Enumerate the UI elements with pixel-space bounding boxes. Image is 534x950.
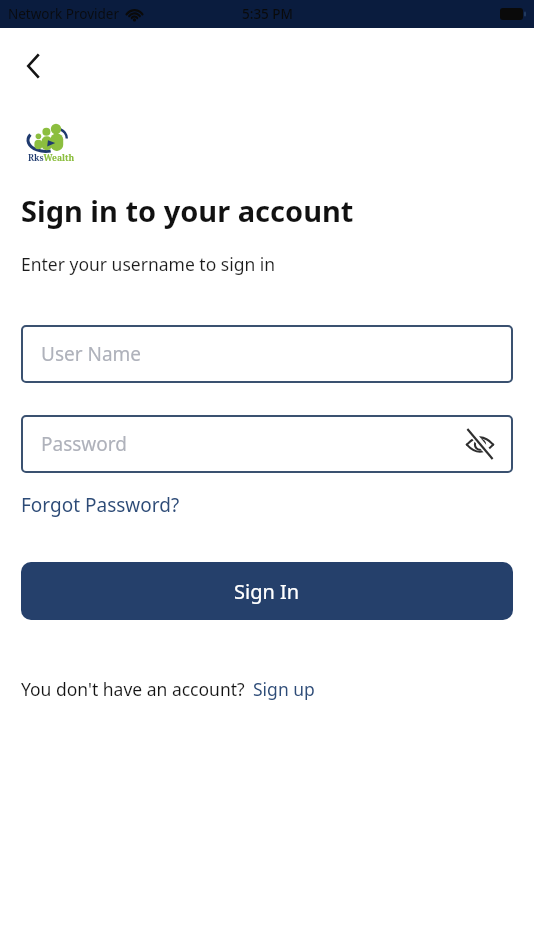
staticText: Sign In (234, 578, 300, 605)
staticText: 5:35 PM (242, 5, 293, 23)
button[interactable] (465, 429, 495, 459)
staticText: Network Provider (8, 5, 120, 23)
staticText: Enter your username to sign in (21, 252, 276, 276)
staticText: Sign in to your account (21, 191, 354, 230)
button[interactable]: Sign up (253, 677, 315, 701)
staticText: Password (41, 431, 127, 457)
button[interactable]: Password (21, 415, 513, 473)
staticText: You don't have an account? (21, 677, 245, 701)
button[interactable]: Sign In (21, 562, 513, 620)
button[interactable] (21, 52, 49, 80)
staticText: RksWealth (28, 152, 75, 164)
button[interactable]: Forgot Password? (21, 492, 180, 518)
staticText: User Name (41, 341, 142, 367)
button[interactable]: User Name (21, 325, 513, 383)
